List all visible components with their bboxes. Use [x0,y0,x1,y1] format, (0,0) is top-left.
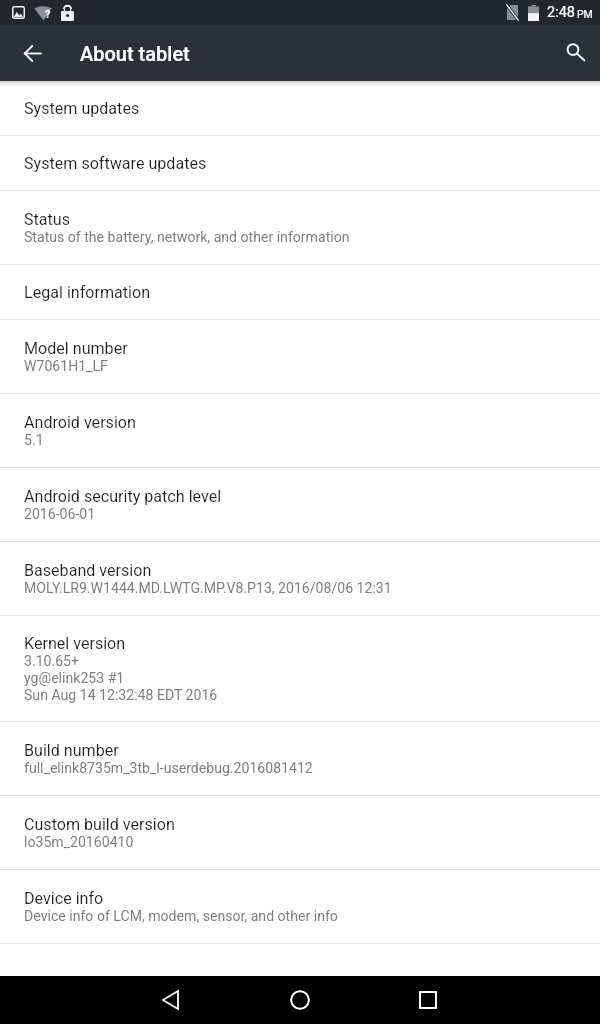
button[interactable]: Baseband version [0,542,600,616]
staticText: System software updates [24,154,207,173]
button[interactable]: Device info [0,870,600,944]
button[interactable]: Home [276,976,324,1024]
staticText: 2:48 [547,4,575,21]
staticText: Model number [24,339,128,358]
button[interactable]: Legal information [0,265,600,320]
staticText: Legal information [24,283,151,302]
staticText: lo35m_20160410 [24,834,134,851]
button[interactable]: Back [148,976,196,1024]
button[interactable]: Model number [0,320,600,394]
button[interactable]: Kernel version [0,616,600,722]
staticText: 3.10.65+ [24,653,80,670]
button[interactable]: Custom build version [0,796,600,870]
staticText: Device info of LCM, modem, sensor, and o… [24,908,338,925]
staticText: 2016-06-01 [24,506,96,523]
staticText: Build number [24,741,119,760]
staticText: PM [577,8,593,20]
staticText: ? [45,8,51,21]
button[interactable]: Android version [0,394,600,468]
staticText: Status of the battery, network, and othe… [24,229,350,246]
button[interactable]: Search [550,29,598,77]
staticText: Baseband version [24,561,152,580]
button[interactable]: Android security patch level [0,468,600,542]
staticText: 5.1 [24,432,44,449]
staticText: MOLY.LR9.W1444.MD.LWTG.MP.V8.P13, 2016/0… [24,580,392,597]
button[interactable]: Build number [0,722,600,796]
button[interactable]: System updates [0,81,600,136]
staticText: Status [24,210,71,229]
staticText: System updates [24,99,140,118]
staticText: full_elink8735m_3tb_l-userdebug.20160814… [24,760,313,777]
staticText: Android security patch level [24,487,222,506]
staticText: yg@elink253 #1 [24,670,125,687]
staticText: W7061H1_LF [24,358,108,375]
staticText: Sun Aug 14 12:32:48 EDT 2016 [24,687,218,704]
staticText: Device info [24,889,104,908]
button[interactable]: Status [0,191,600,265]
button[interactable]: System software updates [0,136,600,191]
button[interactable]: Recent apps [404,976,452,1024]
button[interactable]: Navigate up [8,29,56,77]
staticText: Android version [24,413,136,432]
staticText: Kernel version [24,634,126,653]
staticText: About tablet [80,42,190,65]
staticText: Custom build version [24,815,175,834]
